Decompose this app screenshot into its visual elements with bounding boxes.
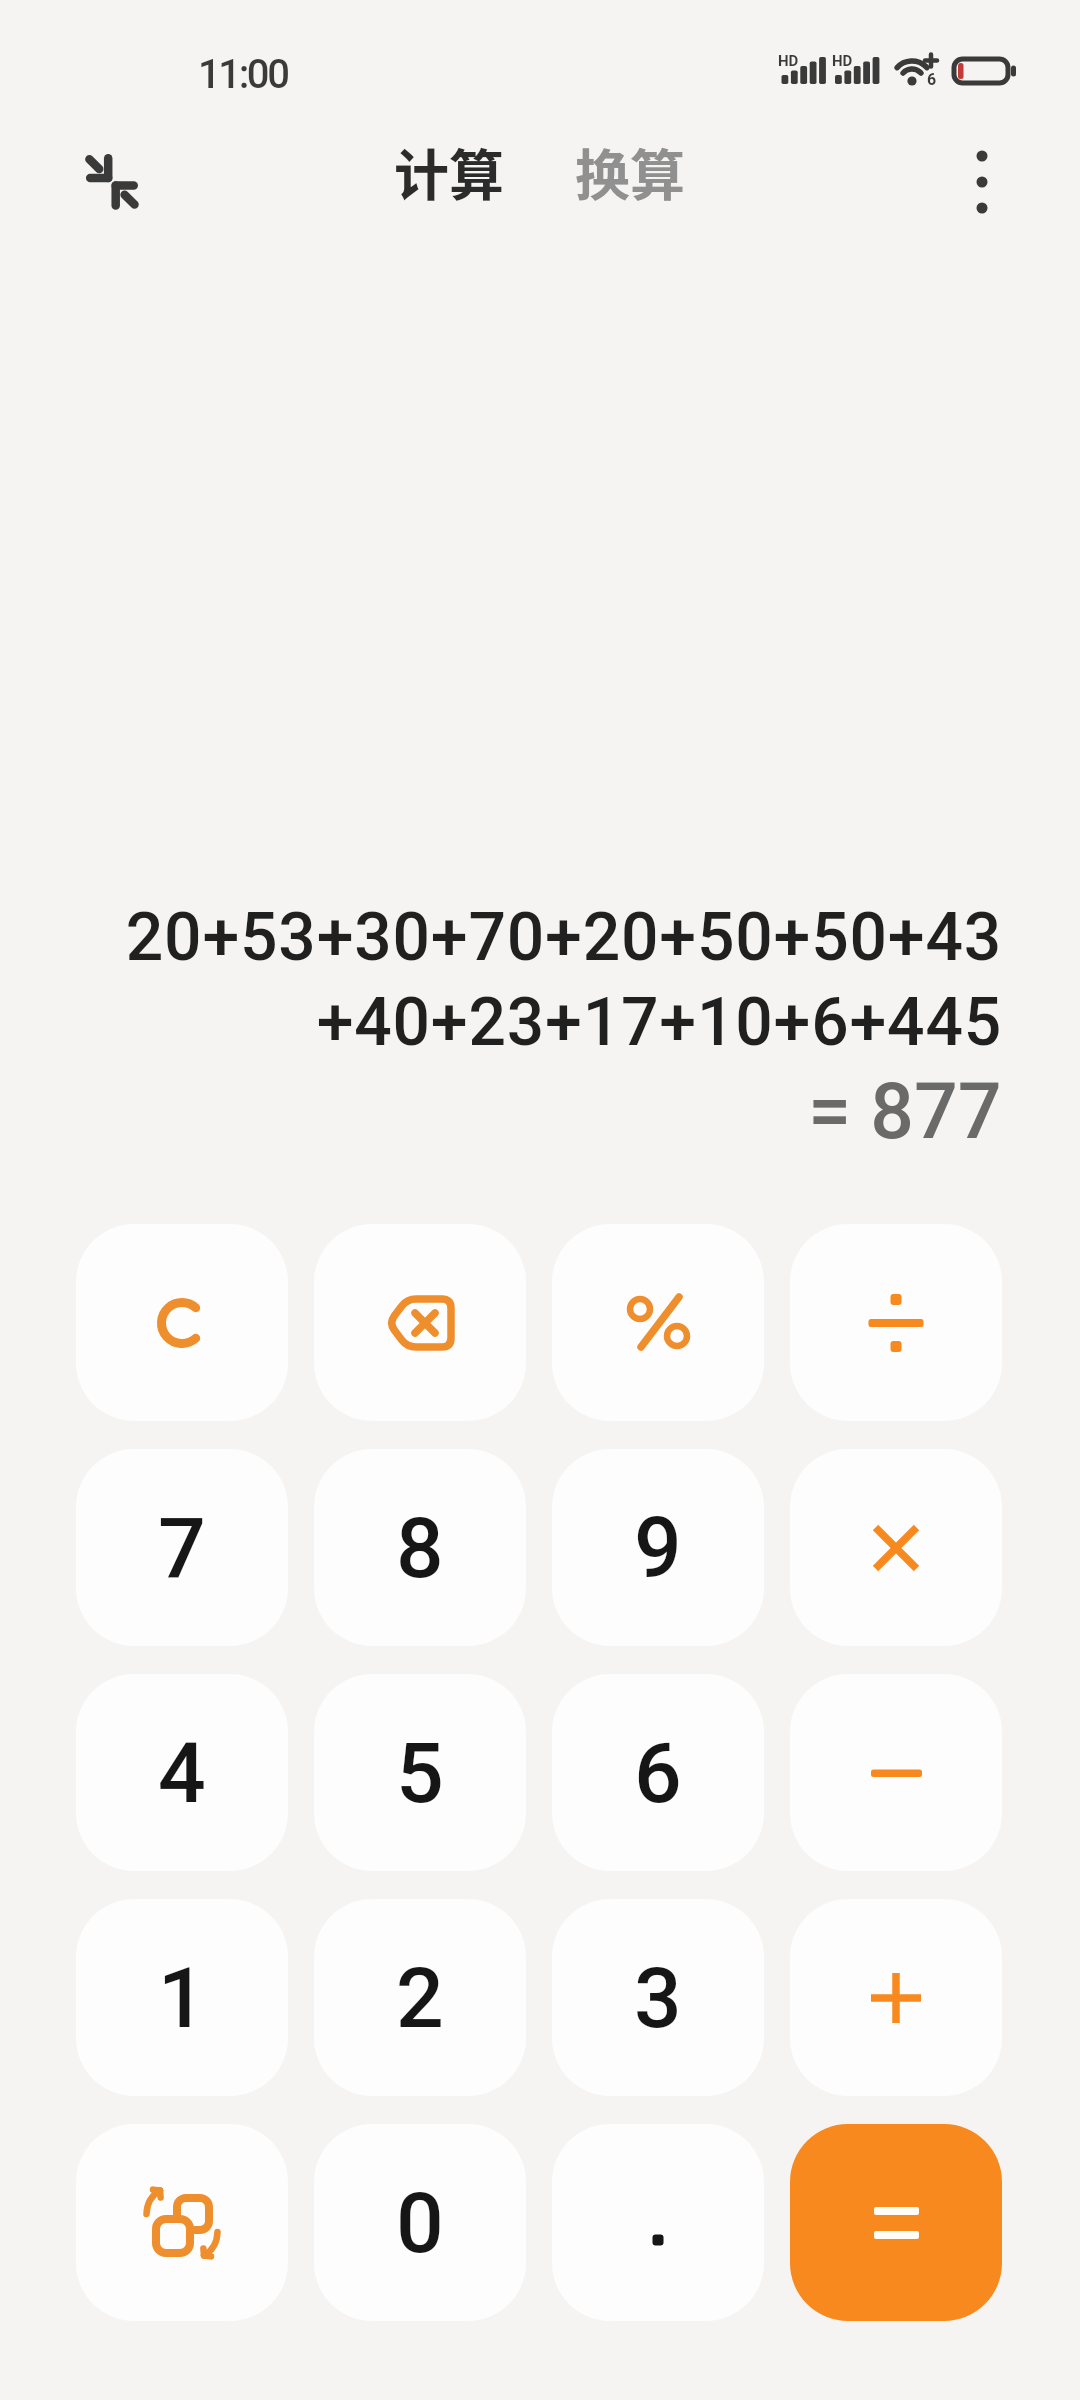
staticText: HD [832,52,853,70]
staticText: 11:00 [198,51,288,98]
button[interactable]: 5 [314,1674,526,1871]
button[interactable] [790,1899,1002,2096]
button[interactable]: 换算 [575,131,686,207]
button[interactable]: 6 [552,1674,764,1871]
button[interactable] [76,1224,288,1421]
button[interactable]: 2 [314,1899,526,2096]
button[interactable]: 9 [552,1449,764,1646]
staticText: 20+53+30+70+20+50+50+43 +40+23+17+10+6+4… [125,899,1002,1061]
staticText: 8 [396,1499,444,1597]
staticText: 6 [634,1724,682,1822]
button[interactable] [790,1449,1002,1646]
staticText: HD [778,52,799,70]
staticText: 2 [396,1949,444,2047]
button[interactable] [314,1224,526,1421]
button[interactable]: 0 [314,2124,526,2321]
button[interactable] [790,1224,1002,1421]
staticText: 换算 [575,131,686,207]
staticText: 6 [927,70,937,89]
button[interactable] [790,1674,1002,1871]
staticText: 9 [634,1499,682,1597]
button[interactable]: 7 [76,1449,288,1646]
button[interactable]: 3 [552,1899,764,2096]
button[interactable]: 4 [76,1674,288,1871]
button[interactable]: 8 [314,1449,526,1646]
staticText: 1 [158,1949,206,2047]
button[interactable] [790,2124,1002,2321]
staticText: 5 [396,1724,444,1822]
staticText: 3 [634,1949,682,2047]
button[interactable]: 1 [76,1899,288,2096]
staticText: 7 [158,1499,206,1597]
staticText: 4 [158,1724,206,1822]
staticText: = 877 [808,1067,1002,1157]
button[interactable] [944,144,1020,220]
button[interactable]: 计算 [394,131,505,207]
button[interactable] [552,2124,764,2321]
button[interactable] [72,139,152,219]
staticText: 计算 [394,131,505,207]
staticText: 0 [396,2174,444,2272]
button[interactable] [552,1224,764,1421]
button[interactable] [76,2124,288,2321]
